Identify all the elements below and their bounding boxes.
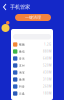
staticText: 云盘 — [19, 92, 25, 95]
staticText: 微博 — [19, 78, 25, 81]
staticText: 淘宝 — [19, 71, 25, 74]
staticText: 视频 — [19, 43, 25, 46]
button[interactable]: 音乐 — [11, 55, 53, 62]
staticText: 一键清理 — [25, 15, 41, 20]
button[interactable]: 微博 — [11, 76, 53, 83]
staticText: 260M — [43, 85, 51, 88]
staticText: 640M — [43, 57, 51, 60]
staticText: 手机管家 — [10, 4, 30, 10]
button[interactable]: 视频 — [11, 41, 53, 48]
staticText: 1.2G — [44, 43, 51, 46]
staticText: 支付 — [19, 64, 25, 67]
staticText: 430M — [43, 71, 51, 74]
button[interactable]: 抖音 — [11, 83, 53, 90]
button[interactable]: 微信 — [11, 48, 53, 55]
staticText: 520M — [43, 64, 51, 67]
button[interactable]: 支付 — [11, 62, 53, 69]
staticText: 310M — [43, 78, 51, 81]
staticText: 音乐 — [19, 57, 25, 60]
staticText: 微信 — [19, 50, 25, 53]
button[interactable]: Back — [2, 3, 8, 11]
staticText: 880M — [43, 50, 51, 53]
button[interactable]: 云盘 — [11, 90, 53, 97]
button[interactable]: 淘宝 — [11, 69, 53, 76]
staticText: 抖音 — [19, 85, 25, 88]
staticText: 180M — [43, 92, 51, 95]
button[interactable]: 一键清理 — [15, 14, 51, 21]
